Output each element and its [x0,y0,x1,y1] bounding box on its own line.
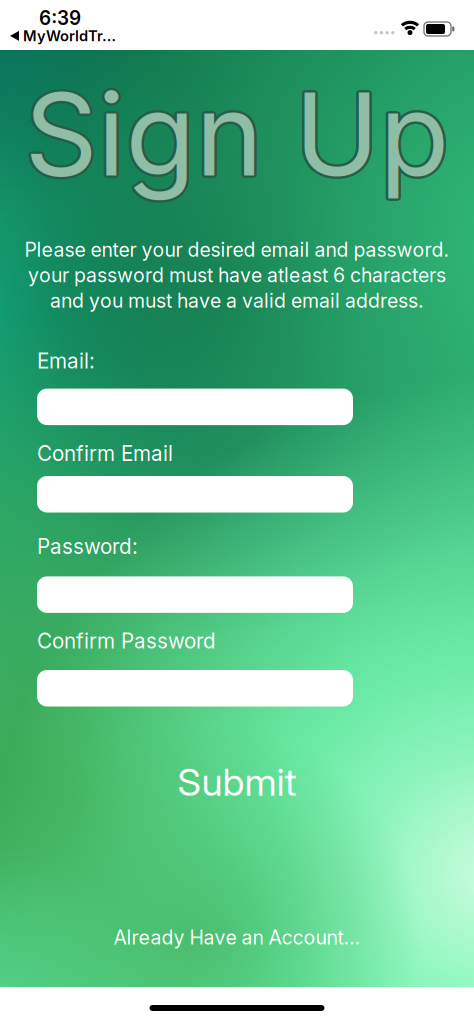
staticText: Sign Up [24,65,449,203]
staticText: Sign Up [27,64,452,202]
staticText: Already Have an Account… [113,926,360,949]
staticText: Confirm Email [37,441,173,466]
staticText: and you must have a valid email address. [50,289,424,312]
staticText: Sign Up [23,67,448,205]
staticText: Sign Up [24,62,449,200]
staticText: Sign Up [26,67,451,205]
staticText: Confirm Password [37,628,216,653]
staticText: Sign Up [27,65,452,203]
staticText: MyWorldTr… [23,27,116,45]
staticText: Submit [177,759,296,805]
button[interactable]: Confirm Password [37,670,353,706]
staticText: Sign Up [24,67,449,205]
staticText: Sign Up [23,63,448,201]
staticText: Sign Up [22,65,447,203]
staticText: Sign Up [22,66,447,204]
button[interactable]: Submit [177,759,296,805]
button[interactable]: Already Have an Account… [113,926,360,949]
staticText: Password: [37,534,138,559]
staticText: Please enter your desired email and pass… [24,238,449,262]
staticText: your password must have atleast 6 charac… [28,263,446,287]
staticText: Sign Up [26,63,451,201]
staticText: Email: [37,348,95,373]
button[interactable]: Password [37,576,353,613]
staticText: 6:39 [39,7,81,30]
staticText: Sign Up [22,64,447,202]
button[interactable]: Back to MyWorldTr… [10,27,116,45]
button[interactable]: Confirm Email [37,476,353,512]
staticText: Sign Up [27,66,452,204]
button[interactable]: Email [37,389,353,425]
